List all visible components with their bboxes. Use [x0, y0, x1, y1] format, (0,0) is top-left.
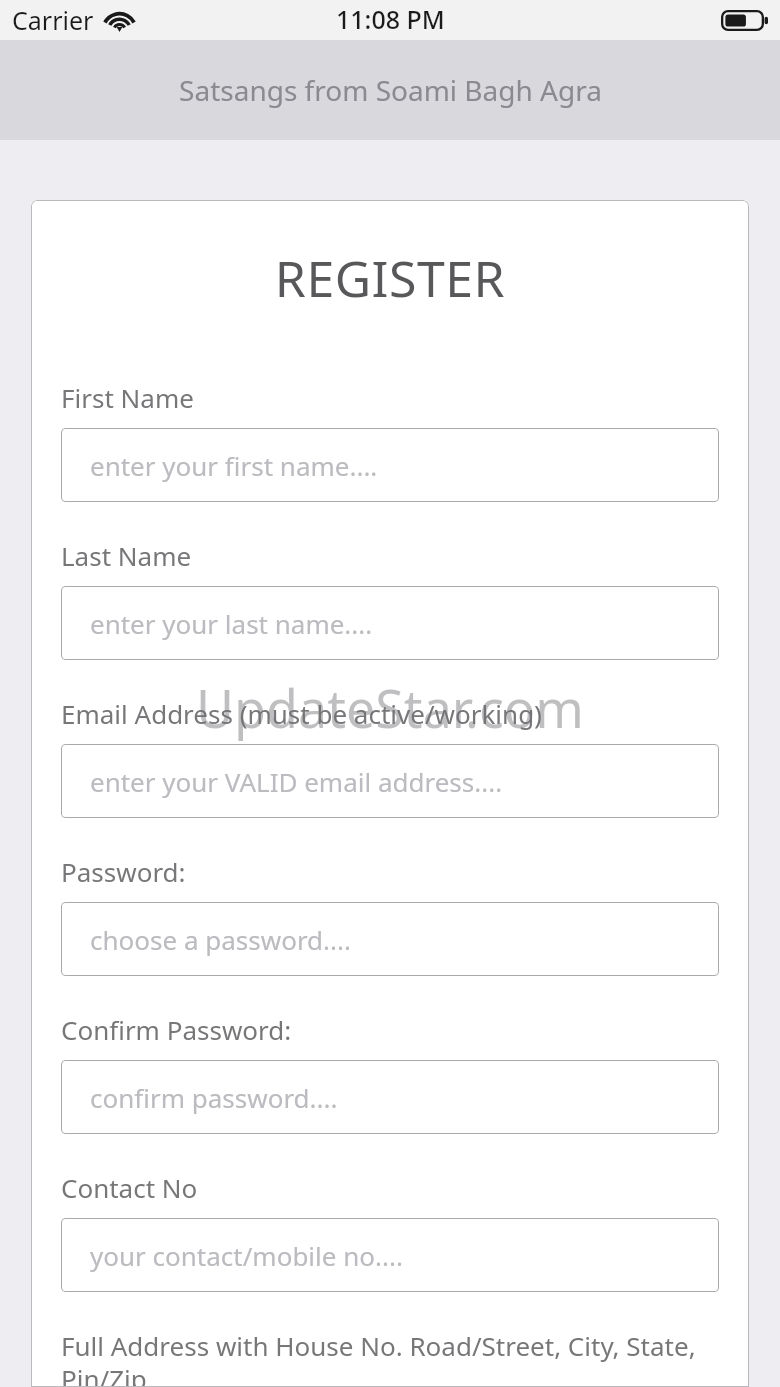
staticText: Password: — [61, 854, 719, 889]
staticText: confirm password.... — [90, 1080, 338, 1115]
button[interactable]: enter your first name.... — [61, 428, 719, 502]
staticText: 11:08 PM — [336, 2, 445, 36]
staticText: Confirm Password: — [61, 1012, 719, 1047]
staticText: enter your VALID email address.... — [90, 764, 503, 799]
staticText: Last Name — [61, 538, 719, 573]
staticText: Contact No — [61, 1170, 719, 1205]
staticText: your contact/mobile no.... — [90, 1238, 403, 1273]
staticText: REGISTER — [61, 244, 719, 312]
staticText: Full Address with House No. Road/Street,… — [61, 1328, 719, 1387]
button[interactable]: enter your last name.... — [61, 586, 719, 660]
button[interactable]: confirm password.... — [61, 1060, 719, 1134]
staticText: First Name — [61, 380, 719, 415]
staticText: Satsangs from Soami Bagh Agra — [179, 71, 602, 109]
staticText: Carrier — [12, 3, 94, 37]
staticText: Email Address (must be active/working) — [61, 696, 719, 731]
button[interactable]: choose a password.... — [61, 902, 719, 976]
button[interactable]: your contact/mobile no.... — [61, 1218, 719, 1292]
staticText: enter your first name.... — [90, 448, 378, 483]
staticText: choose a password.... — [90, 922, 351, 957]
button[interactable]: Satsangs from Soami Bagh Agra — [0, 40, 780, 140]
staticText: enter your last name.... — [90, 606, 373, 641]
button[interactable]: enter your VALID email address.... — [61, 744, 719, 818]
staticText: UpdateStar.com — [0, 672, 780, 743]
